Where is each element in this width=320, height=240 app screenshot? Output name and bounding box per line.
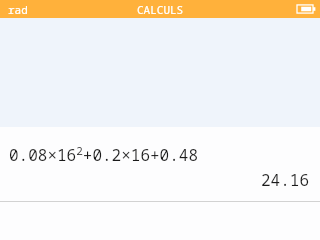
button[interactable]: 0.08×162+0.2×16+0.48 bbox=[0, 127, 320, 201]
button[interactable]: rad bbox=[8, 2, 28, 17]
staticText: 0.08×162+0.2×16+0.48 bbox=[9, 143, 199, 166]
staticText: 24.16 bbox=[261, 169, 310, 191]
staticText: CALCULS bbox=[137, 2, 184, 17]
button[interactable]: Battery level bbox=[296, 3, 316, 15]
